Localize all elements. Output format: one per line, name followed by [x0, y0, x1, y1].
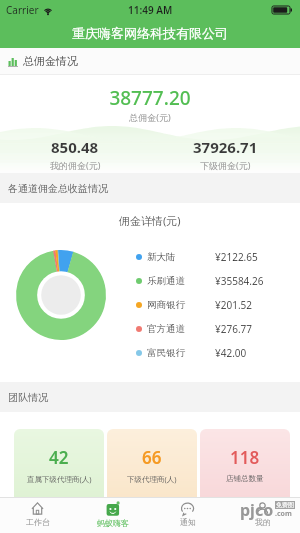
staticText: 42	[49, 446, 69, 469]
button[interactable]: 118	[200, 429, 290, 498]
staticText: 我的佣金(元)	[50, 159, 101, 171]
staticText: 下级佣金(元)	[200, 159, 251, 171]
staticText: 总佣金情况	[23, 54, 78, 68]
staticText: ¥42.00	[215, 346, 247, 360]
staticText: 团队情况	[8, 391, 48, 404]
staticText: ¥201.52	[215, 298, 252, 312]
staticText: .com	[275, 509, 292, 519]
button[interactable]: 我的	[225, 498, 300, 533]
staticText: 总佣金(元)	[0, 111, 300, 123]
button[interactable]: 66	[107, 429, 197, 498]
staticText: 免费图	[276, 501, 294, 509]
staticText: 工作台	[26, 517, 50, 527]
staticText: 佣金详情(元)	[119, 213, 181, 228]
button[interactable]: 蚂蚁嗨客	[75, 498, 150, 533]
staticText: 37926.71	[193, 137, 258, 157]
staticText: 38777.20	[0, 85, 300, 111]
staticText: Carrier	[6, 3, 39, 17]
staticText: 网商银行	[147, 299, 215, 311]
staticText: 富民银行	[147, 347, 215, 359]
staticText: 850.48	[51, 137, 99, 157]
button[interactable]: 工作台	[0, 498, 75, 533]
staticText: 下级代理商(人)	[127, 474, 177, 484]
staticText: 118	[230, 446, 260, 469]
button[interactable]: 42	[14, 429, 104, 498]
staticText: 重庆嗨客网络科技有限公司	[72, 25, 228, 41]
staticText: 直属下级代理商(人)	[27, 474, 92, 484]
staticText: 各通道佣金总收益情况	[8, 182, 108, 195]
staticText: ¥35584.26	[215, 274, 264, 288]
staticText: 11:49 AM	[128, 3, 173, 17]
staticText: 新大陆	[147, 251, 215, 263]
staticText: 通知	[180, 517, 196, 527]
staticText: 蚂蚁嗨客	[97, 518, 129, 528]
staticText: 官方通道	[147, 323, 215, 335]
staticText: pjco	[240, 499, 274, 521]
button[interactable]: 通知	[150, 498, 225, 533]
staticText: 66	[142, 446, 162, 469]
staticText: 我的	[255, 517, 271, 527]
staticText: 乐刷通道	[147, 275, 215, 287]
staticText: 店铺总数量	[226, 474, 264, 483]
staticText: ¥2122.65	[215, 250, 258, 264]
staticText: ¥276.77	[215, 322, 252, 336]
